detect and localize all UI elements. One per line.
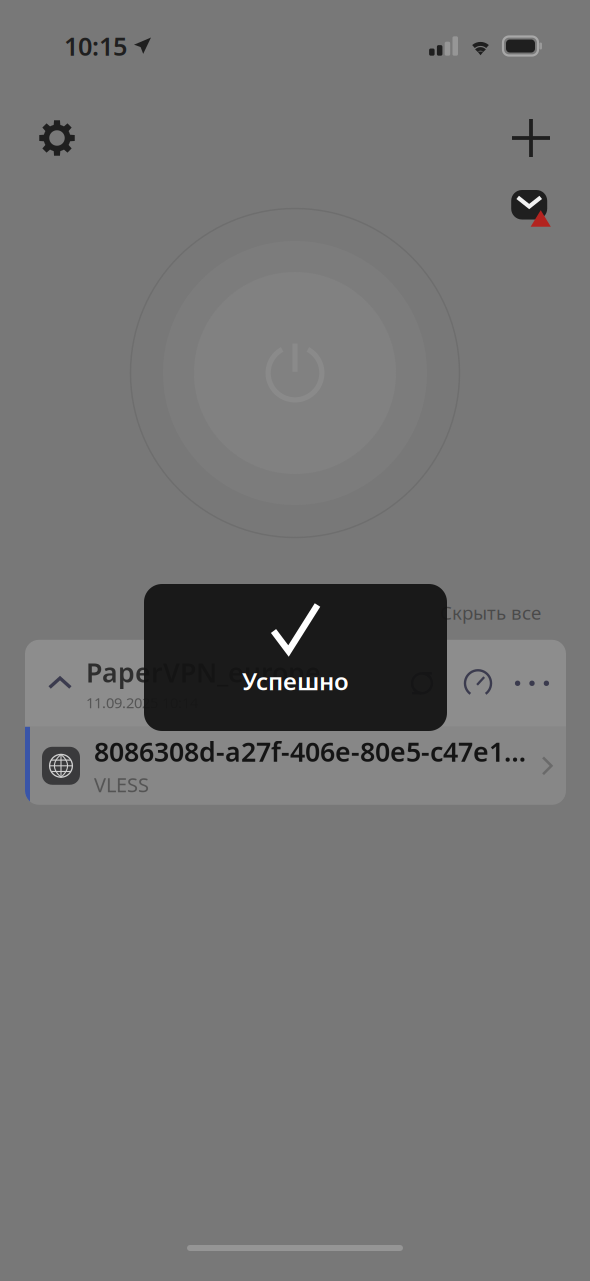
staticText: Успешно xyxy=(242,665,349,697)
button[interactable]: Add configuration xyxy=(487,94,575,182)
staticText: 11.09.2025 10:14 xyxy=(86,693,198,712)
button[interactable]: PaperVPN_europe xyxy=(25,640,566,727)
staticText: Скрыть все xyxy=(440,600,541,625)
button[interactable]: Connect xyxy=(130,208,460,538)
button[interactable]: Messages xyxy=(487,182,575,234)
staticText: 10:15 xyxy=(64,29,127,63)
staticText: PaperVPN_europe xyxy=(86,654,321,690)
staticText: VLESS xyxy=(94,771,149,798)
button[interactable]: 8086308d-a27f-406e-80e5-c47e1… xyxy=(25,727,566,805)
button[interactable]: Settings xyxy=(13,94,101,182)
button[interactable]: Скрыть все xyxy=(434,596,547,629)
staticText: 8086308d-a27f-406e-80e5-c47e1… xyxy=(94,734,526,769)
